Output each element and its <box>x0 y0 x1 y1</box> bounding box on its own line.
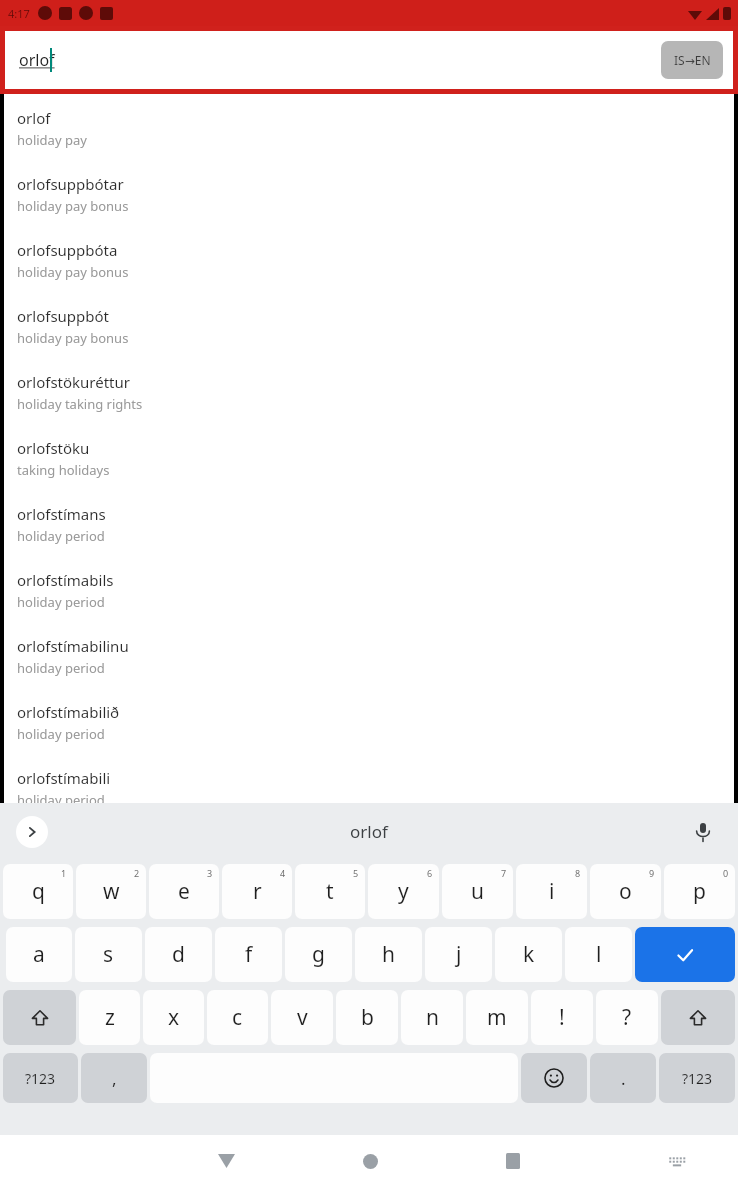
button[interactable]: orlofstímans <box>4 504 734 570</box>
staticText: orlofstímabilið <box>17 702 120 722</box>
button[interactable]: v <box>271 990 333 1045</box>
staticText: 8 <box>575 867 581 879</box>
button[interactable]: p <box>664 864 735 919</box>
button[interactable]: orlof <box>350 820 388 843</box>
button[interactable]: orlofsuppbót <box>4 306 734 372</box>
button[interactable]: orlofstímabils <box>4 570 734 636</box>
button[interactable]: Shift <box>661 990 735 1045</box>
staticText: l <box>596 940 602 969</box>
staticText: ! <box>559 1003 565 1032</box>
button[interactable]: orlofsuppbótar <box>4 174 734 240</box>
button[interactable]: Switch keyboard <box>662 1146 692 1176</box>
button[interactable]: y <box>368 864 439 919</box>
button[interactable]: f <box>215 927 282 982</box>
staticText: orlof <box>17 108 51 128</box>
button[interactable]: b <box>336 990 398 1045</box>
staticText: . <box>621 1067 626 1090</box>
staticText: v <box>297 1003 308 1032</box>
staticText: q <box>32 877 45 906</box>
button[interactable]: t <box>295 864 365 919</box>
button[interactable]: orlofstöku <box>4 438 734 504</box>
staticText: i <box>549 877 555 906</box>
button[interactable]: orlofstímabilinu <box>4 636 734 702</box>
staticText: taking holidays <box>17 461 110 479</box>
button[interactable]: Voice input <box>688 817 718 847</box>
staticText: h <box>382 940 395 969</box>
staticText: holiday pay bonus <box>17 197 129 215</box>
staticText: orlof <box>19 49 55 71</box>
button[interactable]: q <box>3 864 73 919</box>
button[interactable]: l <box>565 927 632 982</box>
staticText: z <box>105 1003 115 1032</box>
staticText: orlofsuppbótar <box>17 174 124 194</box>
staticText: ? <box>622 1003 632 1032</box>
button[interactable]: ! <box>531 990 593 1045</box>
button[interactable]: Expand suggestions <box>16 816 48 848</box>
button[interactable]: c <box>207 990 268 1045</box>
button[interactable]: d <box>145 927 212 982</box>
staticText: ?123 <box>25 1069 56 1088</box>
button[interactable]: ? <box>596 990 658 1045</box>
staticText: 4:17 <box>8 6 30 21</box>
staticText: orlofsuppbóta <box>17 240 118 260</box>
staticText: g <box>312 940 325 969</box>
staticText: holiday pay <box>17 131 87 149</box>
staticText: IS→EN <box>674 52 711 68</box>
staticText: b <box>361 1003 374 1032</box>
staticText: orlofstökuréttur <box>17 372 130 392</box>
staticText: orlofstímabils <box>17 570 114 590</box>
staticText: holiday period <box>17 725 105 743</box>
button[interactable]: g <box>285 927 352 982</box>
staticText: orlofsuppbót <box>17 306 109 326</box>
button[interactable]: u <box>442 864 513 919</box>
button[interactable]: orlofsuppbóta <box>4 240 734 306</box>
button[interactable]: orlofstímabilið <box>4 702 734 768</box>
staticText: c <box>232 1003 243 1032</box>
button[interactable]: z <box>79 990 140 1045</box>
button[interactable]: e <box>149 864 219 919</box>
button[interactable]: n <box>401 990 463 1045</box>
button[interactable]: Home <box>348 1139 392 1183</box>
button[interactable]: m <box>466 990 528 1045</box>
button[interactable]: orlof <box>4 108 734 174</box>
button[interactable]: IS→EN <box>661 41 723 79</box>
staticText: y <box>398 877 409 906</box>
button[interactable]: Recents <box>491 1139 535 1183</box>
button[interactable]: o <box>590 864 661 919</box>
button[interactable]: i <box>516 864 587 919</box>
button[interactable]: h <box>355 927 422 982</box>
staticText: x <box>168 1003 180 1032</box>
button[interactable]: k <box>495 927 562 982</box>
staticText: n <box>426 1003 439 1032</box>
button[interactable]: Emoji <box>521 1053 587 1103</box>
staticText: holiday period <box>17 593 105 611</box>
button[interactable]: s <box>75 927 142 982</box>
button[interactable]: . <box>590 1053 656 1103</box>
staticText: 0 <box>723 867 729 879</box>
button[interactable]: j <box>425 927 492 982</box>
button[interactable]: a <box>6 927 72 982</box>
staticText: s <box>103 940 114 969</box>
staticText: p <box>693 877 706 906</box>
button[interactable]: orlofstímabili <box>4 768 734 803</box>
staticText: orlofstöku <box>17 438 90 458</box>
button[interactable]: x <box>143 990 204 1045</box>
button[interactable]: Enter <box>635 927 735 982</box>
button[interactable]: r <box>222 864 292 919</box>
staticText: a <box>33 940 45 969</box>
staticText: 5 <box>353 867 359 879</box>
staticText: w <box>103 877 120 906</box>
staticText: holiday period <box>17 791 105 803</box>
button[interactable]: orlofstökuréttur <box>4 372 734 438</box>
staticText: f <box>245 940 253 969</box>
button[interactable]: Back <box>204 1139 248 1183</box>
staticText: 3 <box>207 867 213 879</box>
button[interactable]: , <box>81 1053 147 1103</box>
button[interactable]: ?123 <box>659 1053 735 1103</box>
staticText: u <box>471 877 484 906</box>
button[interactable]: w <box>76 864 146 919</box>
button[interactable]: Shift <box>3 990 76 1045</box>
staticText: 7 <box>501 867 507 879</box>
button[interactable]: ?123 <box>3 1053 78 1103</box>
